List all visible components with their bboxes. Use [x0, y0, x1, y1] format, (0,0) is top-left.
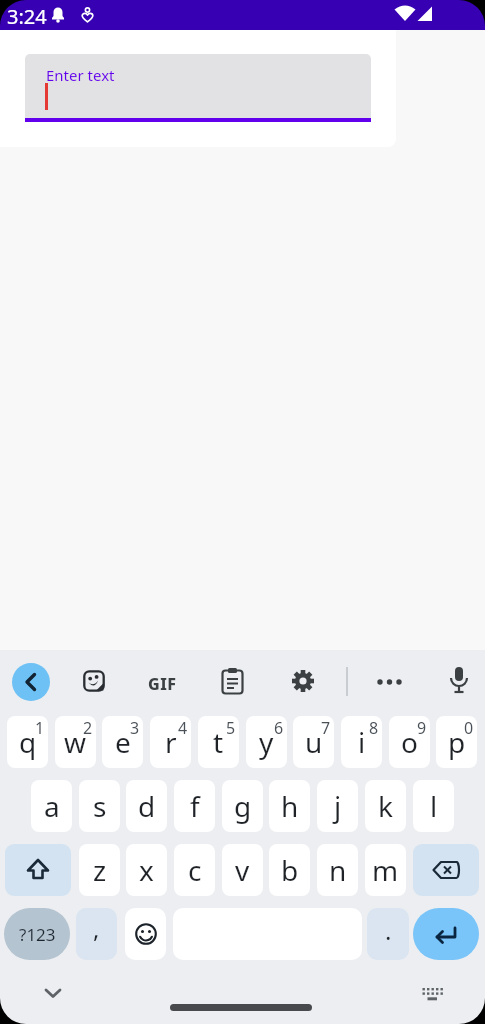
button[interactable]: n — [317, 844, 358, 896]
staticText: w — [64, 723, 87, 761]
staticText: v — [235, 851, 250, 889]
staticText: 4 — [178, 717, 188, 739]
staticText: x — [139, 851, 154, 889]
button[interactable] — [377, 679, 402, 685]
staticText: 8 — [369, 717, 379, 739]
button[interactable]: x — [126, 844, 167, 896]
staticText: r — [165, 723, 177, 761]
button[interactable] — [5, 844, 71, 896]
button[interactable]: g — [222, 780, 263, 832]
button[interactable]: a — [31, 780, 72, 832]
button[interactable]: , — [76, 908, 117, 960]
staticText: Enter text — [46, 65, 115, 85]
staticText: 6 — [274, 717, 284, 739]
button[interactable]: e — [102, 716, 143, 768]
button[interactable] — [221, 667, 244, 695]
button[interactable] — [12, 663, 50, 701]
staticText: q — [19, 723, 37, 761]
staticText: h — [281, 787, 299, 825]
staticText: 7 — [321, 717, 331, 739]
button[interactable]: q — [7, 716, 48, 768]
button[interactable]: ?123 — [4, 908, 70, 960]
staticText: 5 — [226, 717, 236, 739]
button[interactable]: m — [365, 844, 406, 896]
button[interactable]: d — [126, 780, 167, 832]
button[interactable]: p — [436, 716, 477, 768]
staticText: y — [259, 723, 274, 761]
button[interactable]: w — [55, 716, 96, 768]
button[interactable]: t — [198, 716, 239, 768]
staticText: n — [329, 851, 347, 889]
button[interactable] — [44, 988, 62, 998]
staticText: j — [334, 787, 342, 825]
button[interactable]: f — [174, 780, 215, 832]
button[interactable]: . — [367, 908, 409, 960]
staticText: f — [190, 787, 200, 825]
staticText: g — [234, 787, 252, 825]
button[interactable]: c — [174, 844, 215, 896]
staticText: b — [281, 851, 299, 889]
button[interactable]: r — [150, 716, 191, 768]
staticText: d — [138, 787, 156, 825]
staticText: m — [372, 851, 399, 889]
button[interactable]: j — [317, 780, 358, 832]
staticText: 3:24 — [7, 3, 47, 30]
button[interactable] — [448, 666, 470, 696]
staticText: 0 — [464, 717, 474, 739]
button[interactable]: b — [269, 844, 310, 896]
staticText: i — [358, 723, 366, 761]
button[interactable]: y — [246, 716, 287, 768]
button[interactable]: s — [79, 780, 120, 832]
button[interactable] — [413, 844, 479, 896]
button[interactable]: o — [389, 716, 430, 768]
button[interactable]: l — [413, 780, 454, 832]
button[interactable] — [125, 908, 166, 960]
button[interactable] — [291, 669, 315, 693]
button[interactable] — [25, 54, 371, 118]
staticText: p — [448, 723, 466, 761]
button[interactable]: GIF — [148, 673, 177, 695]
staticText: a — [44, 787, 60, 825]
staticText: 1 — [35, 717, 45, 739]
button[interactable] — [421, 987, 443, 1002]
staticText: 3 — [130, 717, 140, 739]
staticText: s — [93, 787, 107, 825]
button[interactable] — [413, 908, 479, 960]
staticText: o — [401, 723, 418, 761]
staticText: , — [93, 912, 100, 945]
staticText: u — [305, 723, 323, 761]
staticText: c — [188, 851, 202, 889]
staticText: l — [430, 787, 438, 825]
button[interactable]: h — [269, 780, 310, 832]
staticText: ?123 — [19, 923, 56, 946]
staticText: z — [93, 851, 107, 889]
staticText: k — [378, 787, 393, 825]
staticText: . — [385, 914, 392, 947]
button[interactable]: i — [341, 716, 382, 768]
button[interactable]: u — [293, 716, 334, 768]
button[interactable]: k — [365, 780, 406, 832]
button[interactable]: v — [222, 844, 263, 896]
staticText: t — [213, 723, 224, 761]
staticText: 9 — [417, 717, 427, 739]
button[interactable] — [83, 670, 105, 692]
staticText: 2 — [83, 717, 93, 739]
staticText: e — [115, 723, 131, 761]
button[interactable]: z — [79, 844, 120, 896]
